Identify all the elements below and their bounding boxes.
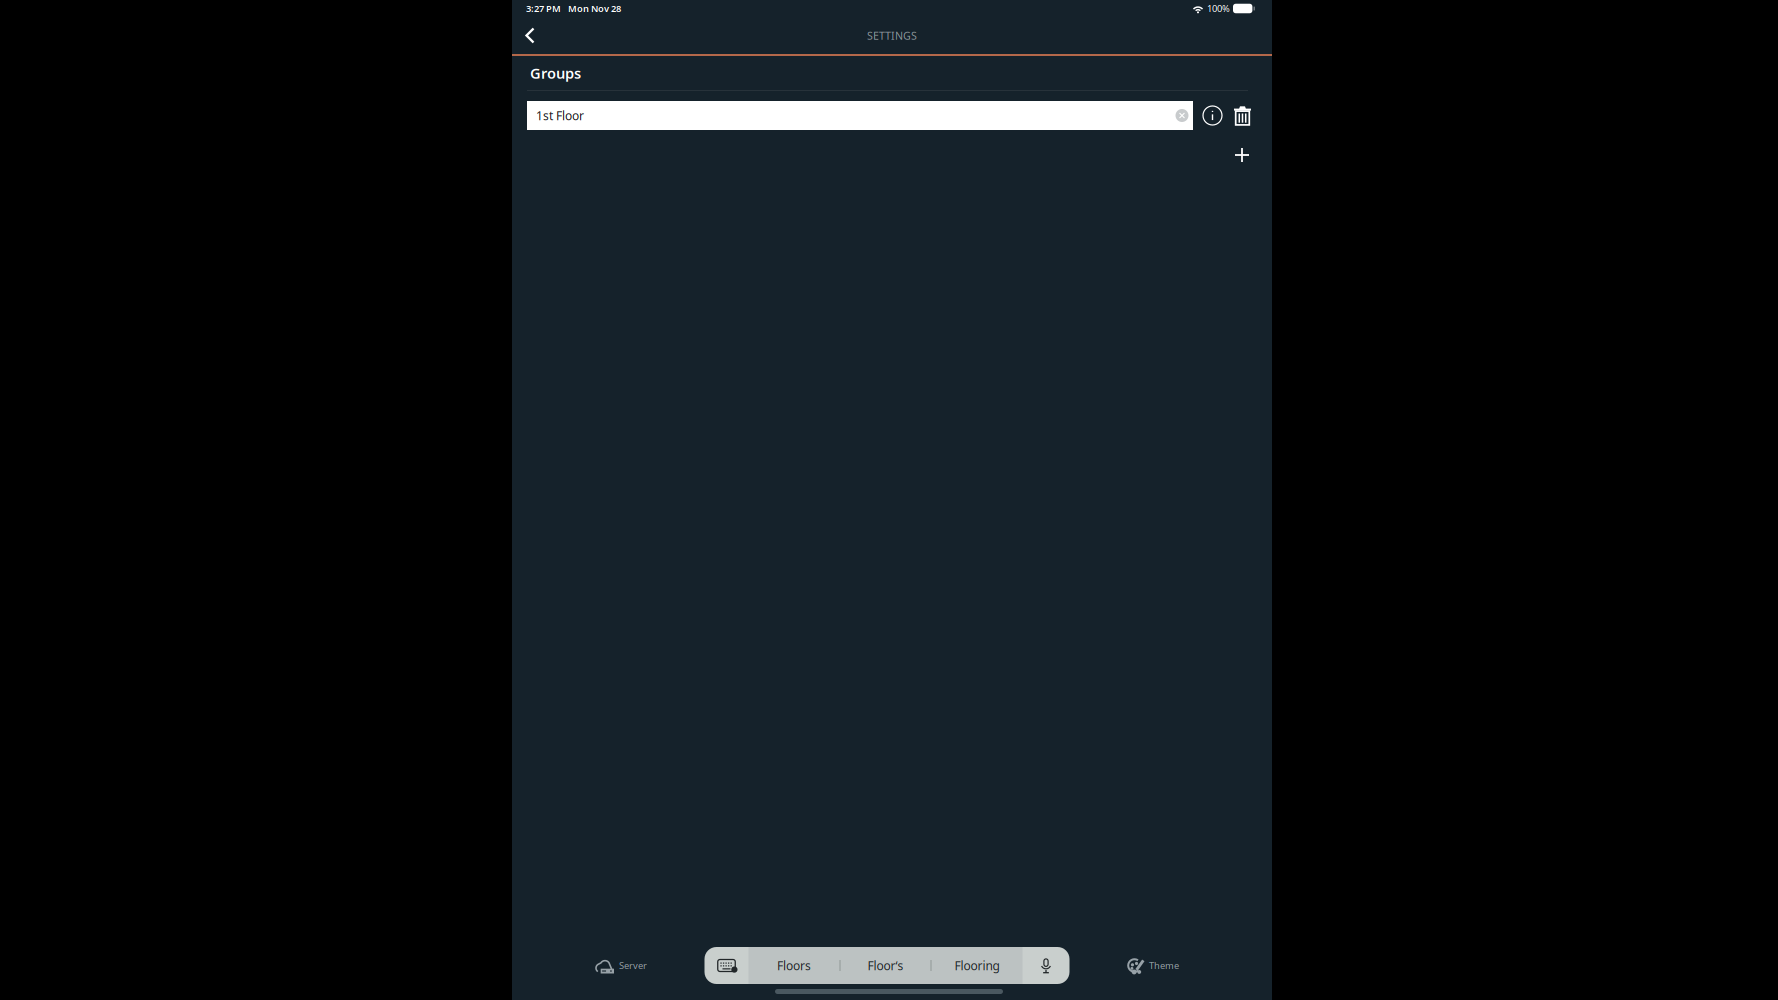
button[interactable]: Flooring — [931, 947, 1022, 984]
button[interactable]: Group info — [1201, 101, 1224, 130]
button[interactable]: Floors — [748, 947, 839, 984]
staticText: 100% — [1207, 2, 1230, 15]
staticText: Mon Nov 28 — [568, 2, 621, 15]
button[interactable]: Clear text — [1175, 109, 1188, 122]
staticText: Floor‘s — [867, 957, 903, 973]
staticText: SETTINGS — [867, 28, 917, 43]
button[interactable]: Floor‘s — [840, 947, 930, 984]
staticText: Flooring — [954, 957, 999, 973]
button[interactable]: Add group — [1225, 143, 1259, 167]
staticText: Floors — [777, 957, 811, 973]
staticText: Groups — [530, 63, 581, 83]
staticText: Server — [619, 959, 647, 972]
button[interactable]: Dictation — [1022, 947, 1069, 984]
button[interactable]: Theme — [1127, 949, 1179, 981]
button[interactable]: Keyboard settings — [704, 947, 748, 984]
staticText: 1st Floor — [536, 107, 584, 123]
staticText: 3:27 PM — [526, 2, 561, 15]
staticText: Theme — [1149, 959, 1179, 972]
button[interactable]: Server — [596, 949, 647, 981]
button[interactable]: Delete group — [1231, 101, 1254, 130]
button[interactable]: Back — [512, 17, 548, 53]
